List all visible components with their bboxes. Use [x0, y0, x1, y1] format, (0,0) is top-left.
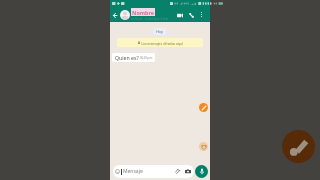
button[interactable]: Camera — [184, 168, 191, 175]
button[interactable]: Los mensajes cifrados aquí — [117, 38, 203, 47]
button[interactable]: Annotate — [282, 130, 315, 163]
staticText: Mensaje — [123, 168, 143, 175]
button[interactable]: Quien es? — [112, 53, 155, 62]
staticText: Los mensajes cifrados aquí — [141, 41, 183, 45]
staticText: Quien es? — [115, 54, 139, 61]
staticText: Hoy — [156, 29, 164, 34]
button[interactable]: Call — [186, 10, 196, 20]
button[interactable]: Video call — [175, 10, 185, 20]
button[interactable]: Recorder tools — [199, 142, 208, 151]
button[interactable]: Record voice message — [195, 165, 208, 178]
button[interactable]: More options — [197, 10, 206, 19]
button[interactable]: Mensaje — [113, 165, 194, 178]
staticText: Nombre — [132, 9, 154, 16]
staticText: en línea visto hace 3 min — [131, 17, 169, 21]
button[interactable]: Attach — [174, 168, 181, 175]
button[interactable]: Back — [111, 11, 119, 19]
button[interactable]: Draw — [199, 103, 208, 112]
staticText: 06:20 p.m. — [140, 56, 153, 60]
